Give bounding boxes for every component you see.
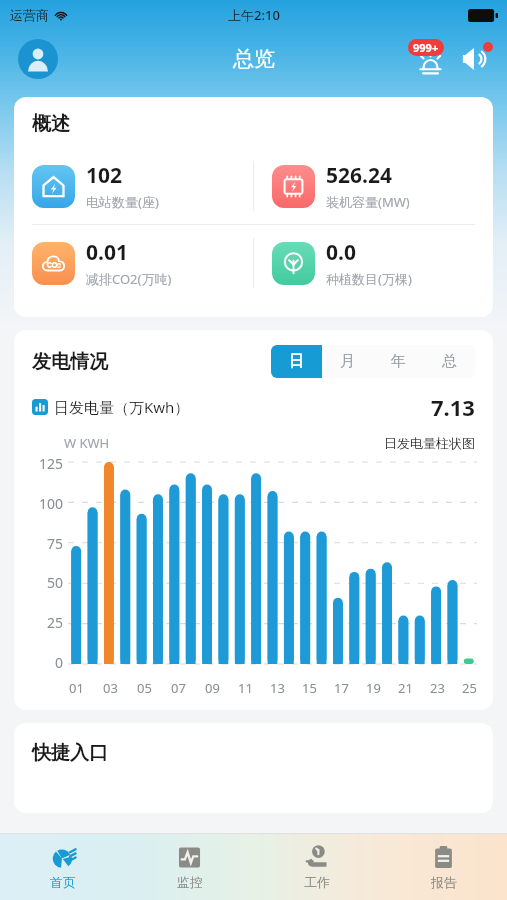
staticText: 7.13 bbox=[431, 392, 475, 422]
staticText: 0.0 bbox=[326, 238, 356, 267]
staticText: 电站数量(座) bbox=[86, 193, 159, 211]
staticText: 75 bbox=[47, 534, 64, 553]
button[interactable]: 526.24 bbox=[272, 148, 493, 224]
staticText: 总 bbox=[442, 352, 457, 371]
staticText: 100 bbox=[39, 494, 64, 513]
staticText: 年 bbox=[391, 352, 406, 371]
staticText: 上午2:10 bbox=[228, 6, 280, 24]
staticText: 首页 bbox=[50, 874, 76, 890]
staticText: 监控 bbox=[177, 874, 203, 890]
button[interactable]: 总 bbox=[424, 345, 475, 378]
staticText: 日发电量（万Kwh） bbox=[54, 397, 190, 417]
button[interactable]: Profile bbox=[18, 39, 58, 79]
button[interactable]: Announcements bbox=[453, 38, 495, 80]
staticText: 概述 bbox=[32, 112, 70, 136]
staticText: 25 bbox=[462, 679, 477, 697]
button[interactable]: 年 bbox=[373, 345, 424, 378]
staticText: 减排CO2(万吨) bbox=[86, 270, 172, 288]
staticText: 25 bbox=[47, 613, 64, 632]
button[interactable]: 报告 bbox=[380, 834, 507, 900]
staticText: 23 bbox=[430, 679, 445, 697]
staticText: 102 bbox=[86, 161, 123, 190]
staticText: 125 bbox=[39, 454, 64, 473]
staticText: 999+ bbox=[413, 40, 439, 55]
staticText: 17 bbox=[334, 679, 349, 697]
staticText: 07 bbox=[171, 679, 186, 697]
staticText: 01 bbox=[69, 679, 84, 697]
staticText: 日发电量柱状图 bbox=[384, 435, 475, 451]
staticText: 发电情况 bbox=[32, 350, 108, 374]
staticText: 09 bbox=[205, 679, 220, 697]
button[interactable]: 首页 bbox=[0, 834, 126, 900]
staticText: 11 bbox=[238, 679, 253, 697]
button[interactable]: 月 bbox=[322, 345, 373, 378]
staticText: 运营商 bbox=[10, 7, 49, 23]
staticText: 19 bbox=[366, 679, 381, 697]
staticText: 526.24 bbox=[326, 161, 392, 190]
staticText: 日 bbox=[289, 352, 304, 371]
button[interactable]: 工作 bbox=[253, 834, 380, 900]
staticText: 05 bbox=[137, 679, 152, 697]
button[interactable]: 监控 bbox=[126, 834, 253, 900]
staticText: 总览 bbox=[233, 46, 275, 72]
button[interactable]: 0.0 bbox=[272, 225, 493, 301]
staticText: 月 bbox=[340, 352, 355, 371]
staticText: 0 bbox=[55, 653, 64, 672]
staticText: 快捷入口 bbox=[32, 741, 108, 765]
staticText: 工作 bbox=[304, 874, 330, 890]
button[interactable]: 日 bbox=[271, 345, 322, 378]
staticText: 03 bbox=[103, 679, 118, 697]
staticText: 种植数目(万棵) bbox=[326, 270, 412, 288]
staticText: 21 bbox=[398, 679, 413, 697]
button[interactable]: 102 bbox=[32, 148, 253, 224]
staticText: 装机容量(MW) bbox=[326, 193, 410, 211]
staticText: 15 bbox=[302, 679, 317, 697]
staticText: 13 bbox=[270, 679, 285, 697]
staticText: 0.01 bbox=[86, 238, 128, 267]
staticText: W KWH bbox=[64, 434, 110, 452]
button[interactable]: 0.01 bbox=[32, 225, 253, 301]
staticText: 50 bbox=[47, 573, 64, 592]
button[interactable]: Alarms bbox=[409, 38, 451, 80]
staticText: 报告 bbox=[431, 874, 457, 890]
